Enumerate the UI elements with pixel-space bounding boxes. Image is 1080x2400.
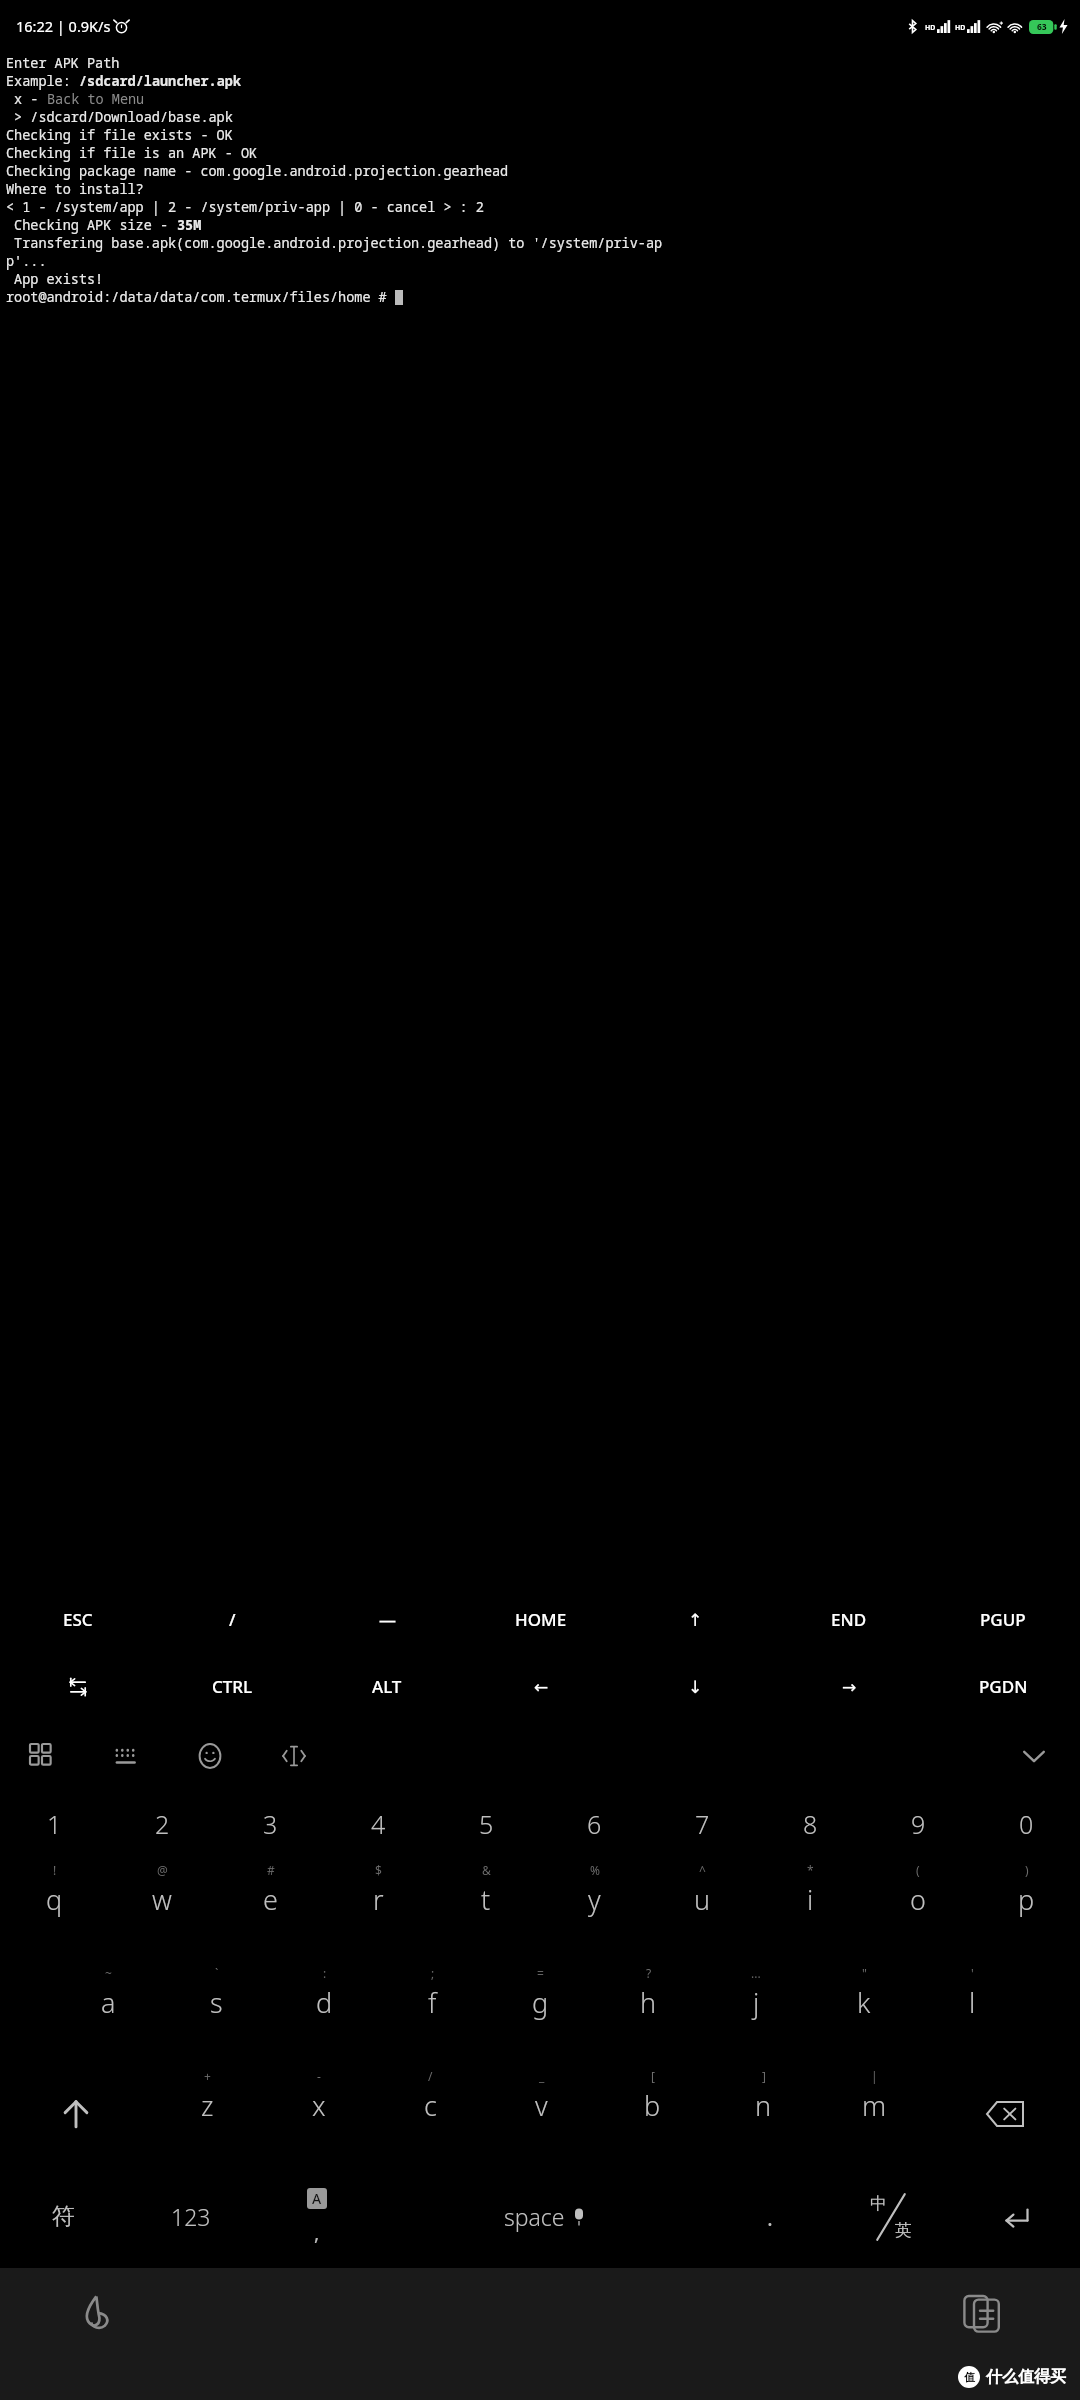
button[interactable]: 123	[127, 2165, 254, 2268]
button[interactable]: $	[324, 1856, 432, 1959]
button[interactable]: 6	[540, 1792, 648, 1856]
staticText: g	[532, 1984, 549, 2021]
button[interactable]: PGDN	[926, 1653, 1080, 1720]
staticText: ↑	[688, 1610, 703, 1630]
button[interactable]: →	[772, 1653, 926, 1720]
staticText: > /sdcard/Download/base.apk	[6, 108, 233, 126]
button[interactable]: Tab	[0, 1653, 155, 1720]
button[interactable]: PGUP	[926, 1586, 1080, 1653]
button[interactable]: 符	[0, 2165, 127, 2268]
button[interactable]: ;	[378, 1959, 486, 2062]
button[interactable]: Text editing	[272, 1734, 316, 1778]
staticText: Example:	[6, 72, 79, 90]
staticText: ,	[314, 2219, 320, 2246]
button[interactable]: Enter	[954, 2165, 1080, 2268]
staticText: t	[481, 1881, 491, 1918]
staticText: Transfering base.apk(com.google.android.…	[6, 234, 663, 252]
staticText: ?	[646, 1965, 652, 1981]
button[interactable]: ALT	[310, 1653, 464, 1720]
staticText: 63	[1037, 21, 1047, 33]
button[interactable]: 3	[216, 1792, 324, 1856]
button[interactable]: `	[162, 1959, 270, 2062]
button[interactable]: 7	[648, 1792, 756, 1856]
button[interactable]: "	[810, 1959, 918, 2062]
button[interactable]: Backspace	[930, 2062, 1080, 2165]
staticText: b	[644, 2087, 661, 2124]
staticText: ^	[699, 1862, 706, 1878]
button[interactable]: ESC	[0, 1586, 155, 1653]
button[interactable]: Assistant	[70, 2286, 126, 2342]
button[interactable]: ~	[54, 1959, 162, 2062]
button[interactable]: —	[310, 1586, 464, 1653]
button[interactable]: CTRL	[155, 1653, 310, 1720]
button[interactable]: Shift	[0, 2062, 151, 2165]
staticText: "	[862, 1965, 867, 1981]
button[interactable]: |	[819, 2062, 930, 2165]
staticText: ]	[762, 2068, 766, 2084]
button[interactable]: +	[151, 2062, 263, 2165]
button[interactable]: -	[263, 2062, 375, 2165]
staticText: o	[910, 1881, 926, 1918]
button[interactable]: _	[486, 2062, 597, 2165]
staticText: 中	[870, 2193, 887, 2214]
button[interactable]: END	[772, 1586, 926, 1653]
button[interactable]: =	[486, 1959, 594, 2062]
staticText: d	[316, 1984, 333, 2021]
staticText: root@android:/data/data/com.termux/files…	[6, 288, 395, 306]
button[interactable]: ^	[648, 1856, 756, 1959]
staticText: Checking APK size -	[6, 216, 177, 234]
button[interactable]: 2	[108, 1792, 216, 1856]
staticText: ESC	[63, 1608, 93, 1631]
button[interactable]: HOME	[464, 1586, 618, 1653]
staticText: v	[535, 2087, 548, 2124]
staticText: 6	[587, 1807, 602, 1841]
staticText: '	[971, 1965, 974, 1981]
button[interactable]: %	[540, 1856, 648, 1959]
staticText: 4	[371, 1807, 386, 1841]
button[interactable]: space	[380, 2165, 711, 2268]
staticText: Checking if file exists - OK	[6, 126, 233, 144]
button[interactable]: !	[0, 1856, 108, 1959]
button[interactable]: (	[864, 1856, 972, 1959]
button[interactable]: Keyboard layout	[104, 1734, 148, 1778]
staticText: ;	[431, 1965, 435, 1981]
button[interactable]: A	[254, 2165, 380, 2268]
button[interactable]: 1	[0, 1792, 108, 1856]
button[interactable]: ↑	[618, 1586, 772, 1653]
staticText: %	[590, 1862, 600, 1878]
button[interactable]: :	[270, 1959, 378, 2062]
button[interactable]: )	[972, 1856, 1080, 1959]
button[interactable]: ...	[702, 1959, 810, 2062]
button[interactable]: /	[155, 1586, 310, 1653]
button[interactable]: 0	[972, 1792, 1080, 1856]
staticText: 0	[1019, 1807, 1034, 1841]
staticText: HD	[925, 23, 936, 33]
button[interactable]: *	[756, 1856, 864, 1959]
button[interactable]: /	[375, 2062, 486, 2165]
staticText: s	[210, 1984, 223, 2021]
button[interactable]: ↓	[618, 1653, 772, 1720]
button[interactable]: Hide keyboard	[1012, 1734, 1056, 1778]
button[interactable]: @	[108, 1856, 216, 1959]
staticText: 3	[263, 1807, 278, 1841]
button[interactable]: [	[597, 2062, 708, 2165]
button[interactable]: .	[711, 2165, 828, 2268]
button[interactable]: ←	[464, 1653, 618, 1720]
button[interactable]: Apps	[20, 1734, 64, 1778]
button[interactable]: 8	[756, 1792, 864, 1856]
button[interactable]: 5	[432, 1792, 540, 1856]
staticText: →	[842, 1677, 857, 1697]
button[interactable]: Switch language	[828, 2165, 954, 2268]
button[interactable]: Recent apps	[954, 2286, 1010, 2342]
button[interactable]: Emoji	[188, 1734, 232, 1778]
button[interactable]: 9	[864, 1792, 972, 1856]
button[interactable]: 4	[324, 1792, 432, 1856]
button[interactable]: &	[432, 1856, 540, 1959]
staticText: f	[428, 1984, 437, 2021]
button[interactable]: #	[216, 1856, 324, 1959]
staticText: 9	[911, 1807, 926, 1841]
button[interactable]: ]	[708, 2062, 819, 2165]
button[interactable]: ?	[594, 1959, 702, 2062]
button[interactable]: '	[918, 1959, 1026, 2062]
staticText: @	[157, 1862, 168, 1878]
